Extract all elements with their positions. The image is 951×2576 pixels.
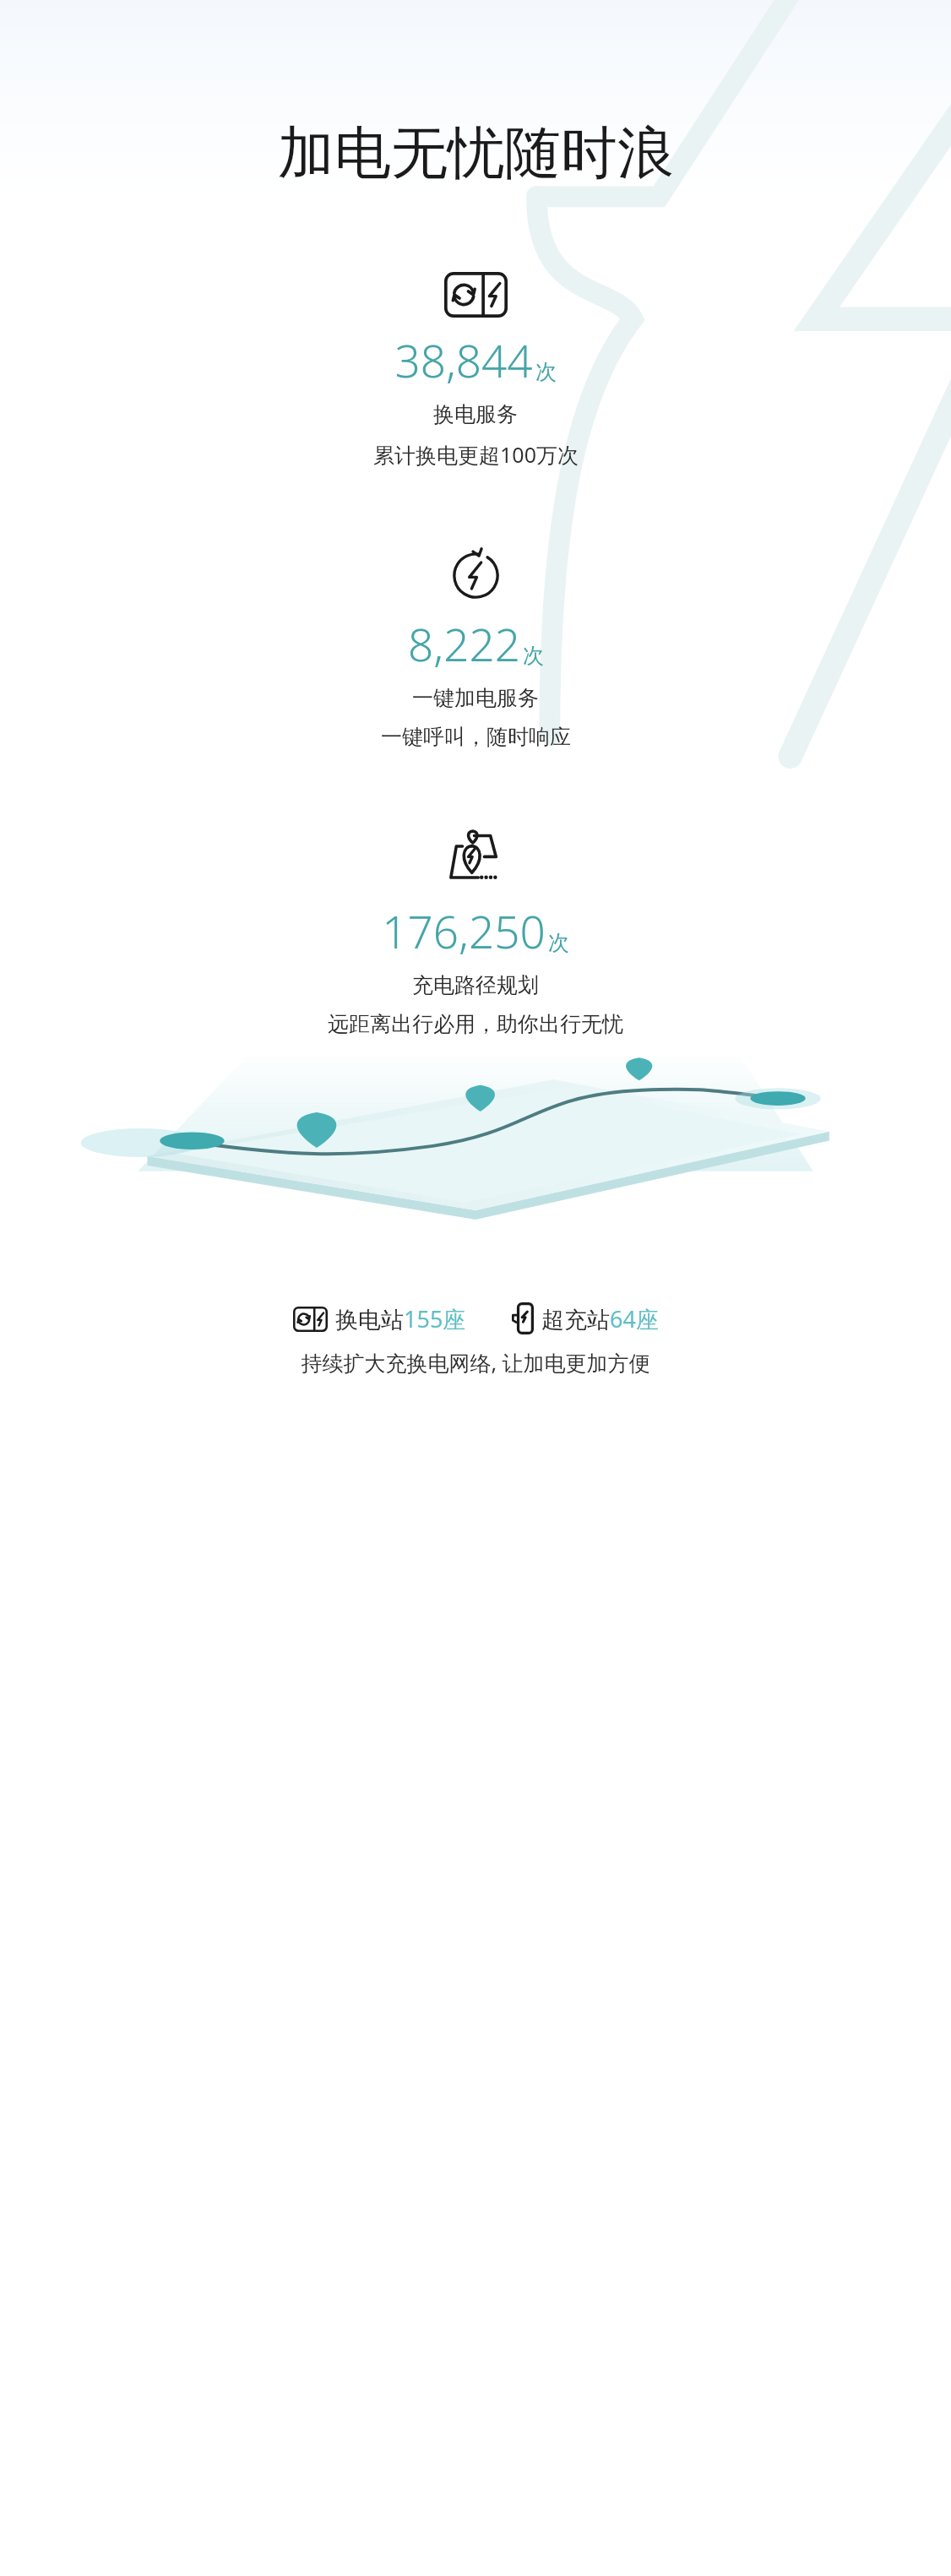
other: 充电路径规划 <box>445 828 506 889</box>
other: 一键加电服务 <box>450 550 502 601</box>
button[interactable]: 超充站 <box>510 1302 659 1334</box>
staticText: 换电服务 <box>433 401 518 427</box>
staticText: 一键加电服务 <box>412 685 539 711</box>
staticText: 一键呼叫，随时响应 <box>381 724 571 750</box>
staticText: 次 <box>523 643 544 669</box>
button[interactable]: 充电路径规划 <box>0 828 951 1037</box>
staticText: 换电站155座 <box>335 1303 466 1334</box>
staticText: 加电无忧随时浪 <box>278 117 674 188</box>
other: 换电服务 <box>444 272 508 318</box>
button[interactable]: 换电站 <box>293 1303 466 1334</box>
other: 换电站 <box>293 1307 328 1332</box>
staticText: 持续扩大充换电网络, 让加电更加方便 <box>301 1348 650 1377</box>
staticText: 远距离出行必用，助你出行无忧 <box>328 1011 623 1037</box>
staticText: 次 <box>548 930 569 956</box>
staticText: 累计换电更超100万次 <box>373 440 579 469</box>
staticText: 38,844 <box>394 329 533 390</box>
staticText: 8,222 <box>408 613 520 674</box>
button[interactable]: 换电服务 <box>0 272 951 469</box>
staticText: 超充站64座 <box>541 1303 659 1334</box>
staticText: 176,250 <box>382 900 546 961</box>
button[interactable]: 一键加电服务 <box>0 550 951 750</box>
other: 超充站 <box>510 1302 534 1334</box>
staticText: 充电路径规划 <box>412 972 539 998</box>
staticText: 次 <box>535 359 557 385</box>
